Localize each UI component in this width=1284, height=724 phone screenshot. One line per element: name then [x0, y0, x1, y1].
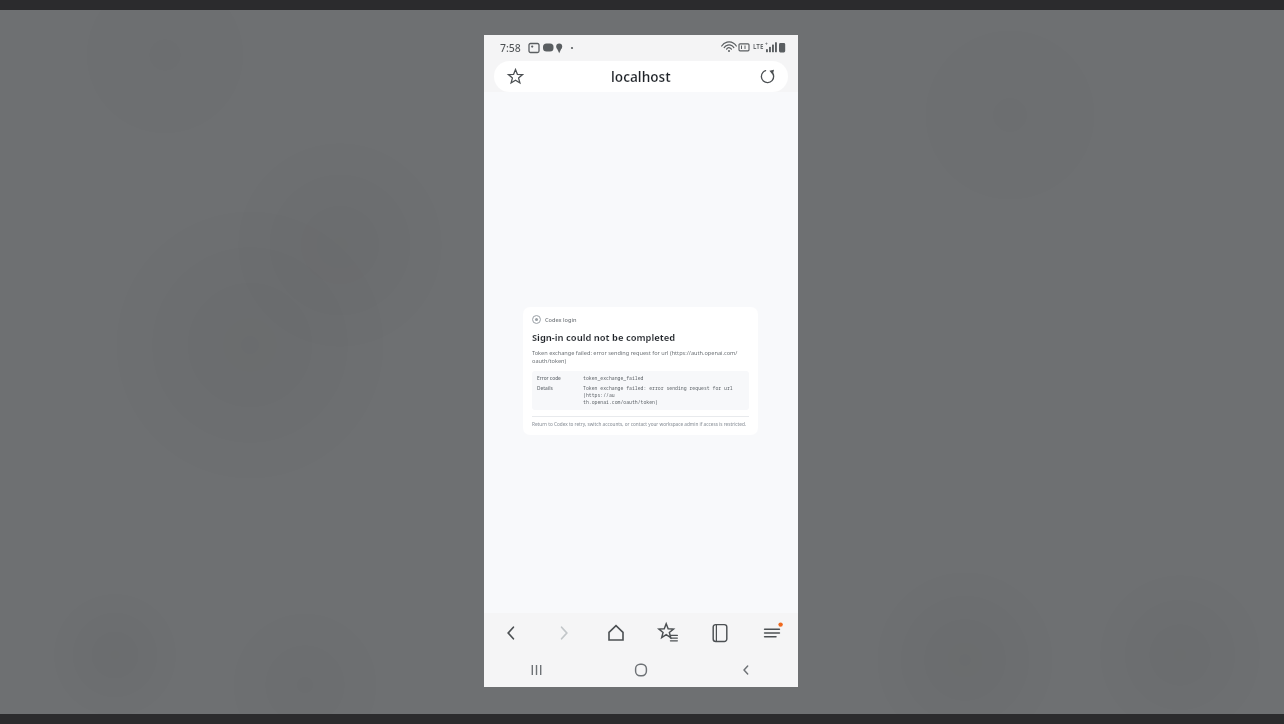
staticText: localhost: [611, 68, 671, 86]
staticText: token_exchange_failed: [583, 375, 644, 382]
button[interactable]: Bookmark: [494, 61, 536, 92]
staticText: Details: [537, 385, 583, 392]
button[interactable]: localhost: [605, 64, 677, 90]
button[interactable]: Menu: [746, 613, 798, 653]
staticText: Codex login: [545, 316, 577, 324]
button[interactable]: Home: [590, 613, 642, 653]
button[interactable]: Forward: [537, 613, 590, 653]
staticText: Error code: [537, 375, 583, 382]
button[interactable]: Tabs: [694, 613, 746, 653]
button[interactable]: Reload: [746, 61, 788, 92]
button[interactable]: Bookmarks: [642, 613, 694, 653]
staticText: Token exchange failed: error sending req…: [583, 385, 744, 406]
staticText: 7:58: [500, 41, 521, 55]
staticText: +: [765, 41, 768, 48]
staticText: Sign-in could not be completed: [532, 331, 676, 344]
button[interactable]: Home: [588, 653, 693, 687]
button[interactable]: Back: [484, 613, 537, 653]
staticText: Return to Codex to retry, switch account…: [532, 421, 747, 427]
staticText: LTE: [753, 42, 764, 50]
button[interactable]: Back: [693, 653, 798, 687]
staticText: Token exchange failed: error sending req…: [532, 349, 749, 365]
button[interactable]: Recents: [484, 653, 588, 687]
